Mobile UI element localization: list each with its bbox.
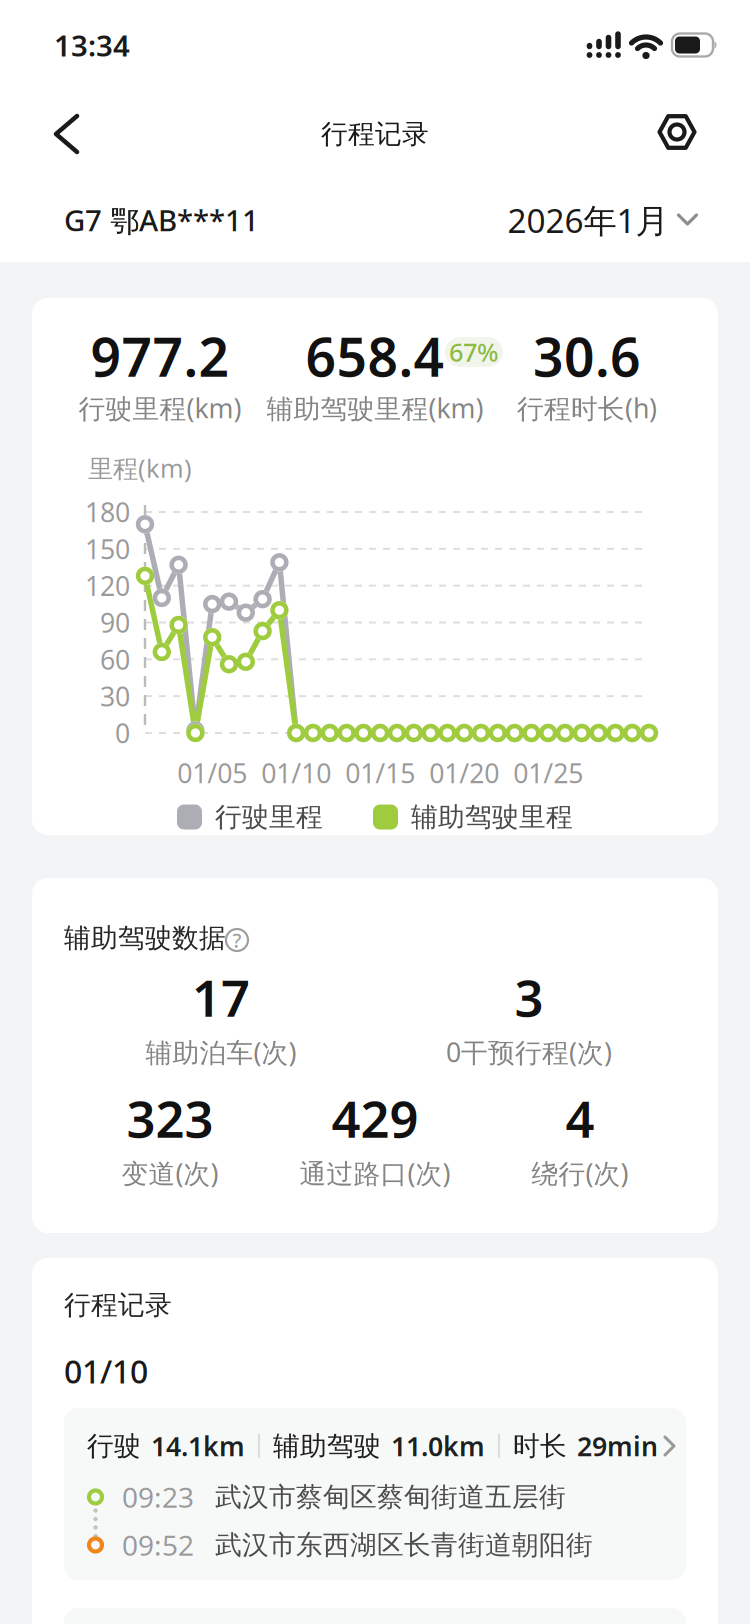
- staticText: 09:52: [122, 1526, 194, 1564]
- staticText: 30: [100, 678, 130, 714]
- staticText: G7 鄂AB***11: [64, 200, 259, 239]
- staticText: 150: [85, 531, 130, 566]
- staticText: 429: [331, 1084, 418, 1152]
- staticText: 977.2: [90, 321, 229, 391]
- staticText: 17: [192, 963, 250, 1031]
- staticText: 01/05: [177, 755, 247, 791]
- staticText: 658.4: [305, 321, 444, 391]
- staticText: 30.6: [533, 321, 641, 391]
- staticText: 323: [126, 1084, 213, 1152]
- button[interactable]: 行驶: [64, 1408, 686, 1580]
- staticText: 通过路口(次): [299, 1155, 450, 1191]
- button[interactable]: Back: [44, 112, 88, 156]
- staticText: 辅助驾驶里程: [411, 801, 573, 833]
- staticText: 01/10: [261, 755, 331, 791]
- button[interactable]: 2026年1月: [507, 198, 698, 242]
- staticText: ?: [232, 927, 241, 953]
- button[interactable]: Help: [220, 923, 254, 957]
- staticText: 11.0km: [391, 1428, 485, 1464]
- staticText: 67%: [449, 335, 499, 369]
- staticText: 0干预行程(次): [446, 1034, 612, 1070]
- staticText: 60: [100, 642, 130, 677]
- staticText: 14.1km: [151, 1428, 245, 1464]
- staticText: 武汉市东西湖区长青街道朝阳街: [215, 1529, 593, 1561]
- staticText: 辅助驾驶: [273, 1430, 389, 1462]
- staticText: 行程记录: [321, 118, 429, 150]
- staticText: 3: [514, 963, 543, 1031]
- staticText: 时长: [513, 1430, 575, 1462]
- staticText: 01/15: [345, 755, 415, 791]
- staticText: 01/10: [64, 1350, 148, 1392]
- staticText: 行程记录: [64, 1289, 172, 1321]
- staticText: 4: [565, 1084, 594, 1152]
- staticText: 辅助驾驶数据: [64, 922, 226, 954]
- staticText: 13:34: [54, 25, 130, 64]
- staticText: 辅助泊车(次): [145, 1034, 296, 1070]
- staticText: 里程(km): [88, 451, 192, 485]
- staticText: 行程时长(h): [517, 390, 657, 426]
- staticText: 120: [85, 568, 130, 603]
- staticText: 09:23: [122, 1478, 194, 1516]
- staticText: 180: [85, 494, 130, 530]
- staticText: 辅助驾驶里程(km): [266, 390, 483, 426]
- staticText: 绕行(次): [531, 1155, 628, 1191]
- staticText: 行驶里程(km): [78, 390, 241, 426]
- staticText: 变道(次): [121, 1155, 218, 1191]
- staticText: 01/20: [429, 755, 499, 791]
- staticText: 武汉市蔡甸区蔡甸街道五层街: [215, 1481, 566, 1513]
- button[interactable]: Settings: [653, 108, 701, 156]
- staticText: 2026年1月: [507, 198, 668, 242]
- staticText: 29min: [577, 1428, 658, 1464]
- staticText: 01/25: [513, 755, 583, 791]
- staticText: 行驶里程: [215, 801, 323, 833]
- staticText: 90: [100, 605, 130, 640]
- staticText: 行驶: [87, 1430, 149, 1462]
- staticText: 0: [115, 715, 130, 751]
